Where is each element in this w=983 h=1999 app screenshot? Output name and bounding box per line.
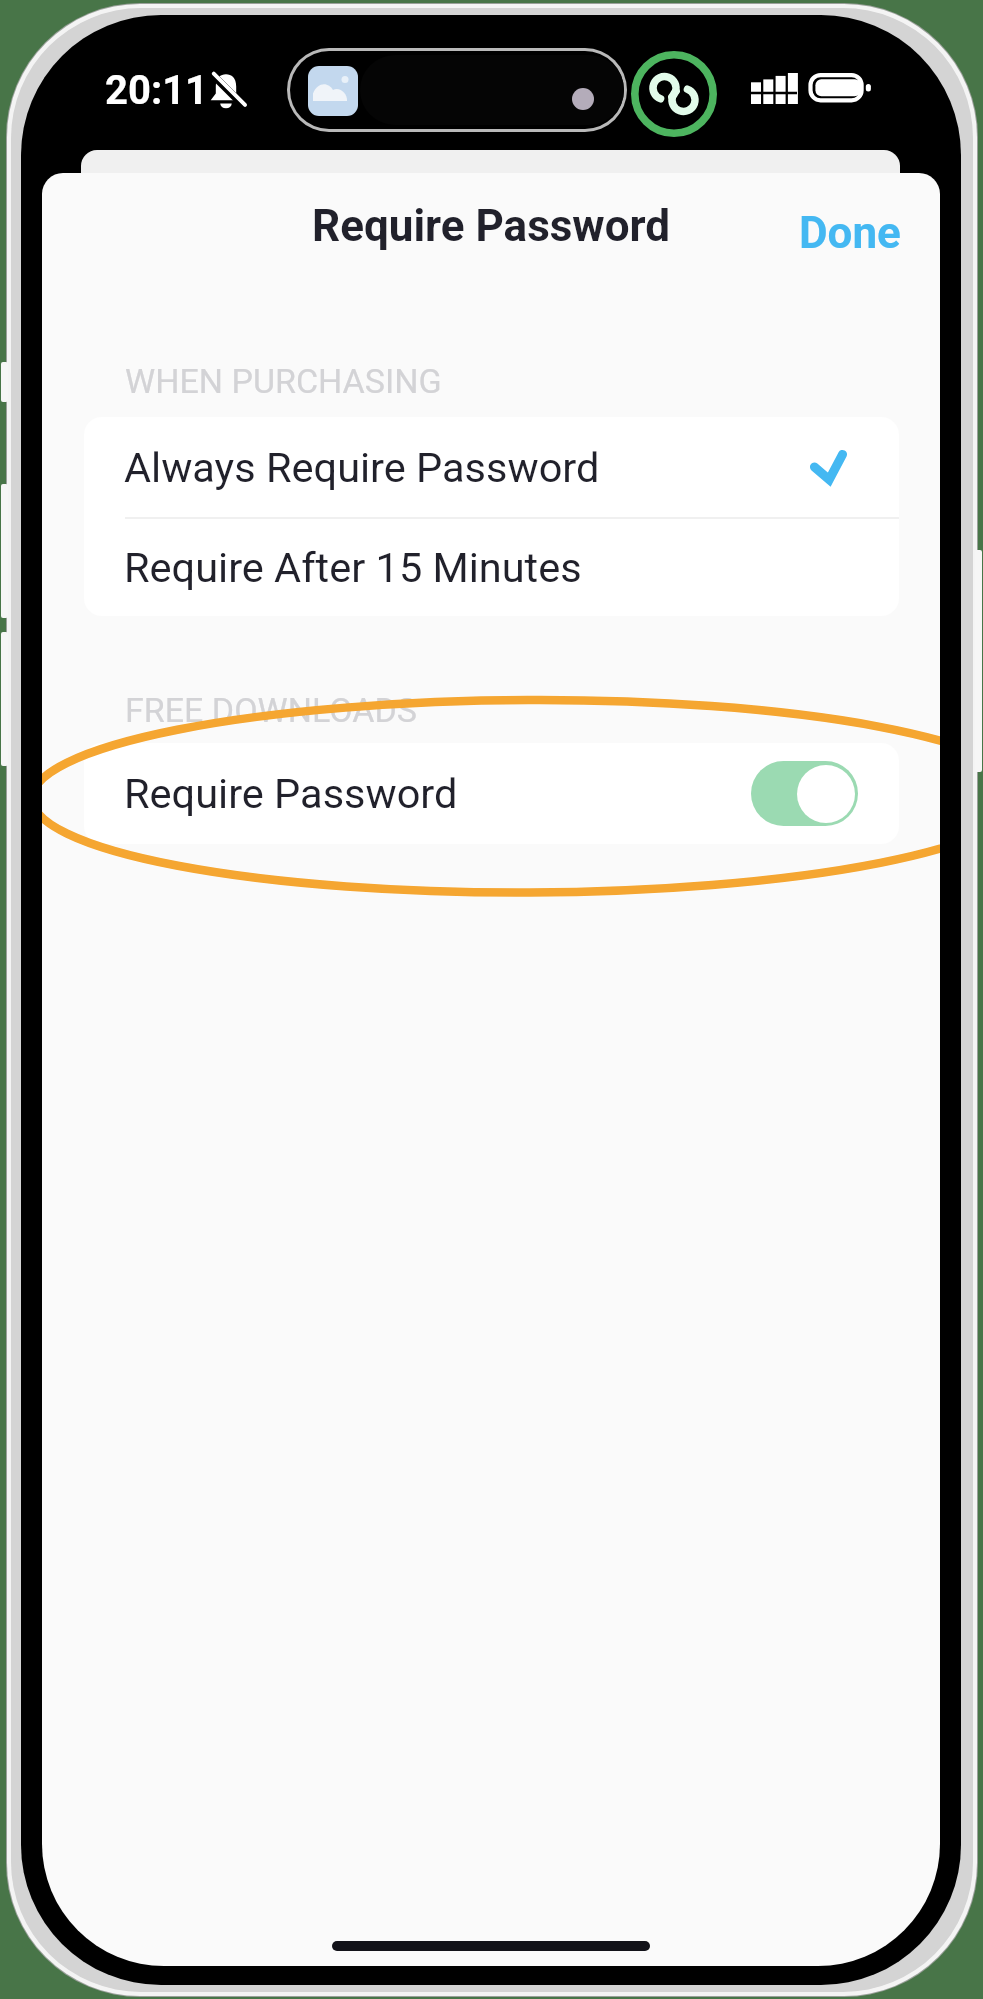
button[interactable]: Require Password xyxy=(84,743,899,844)
staticText: FREE DOWNLOADS xyxy=(125,690,417,730)
staticText: 20:11 xyxy=(105,67,209,114)
button[interactable]: Always Require Password xyxy=(84,417,899,517)
staticText: Require Password xyxy=(124,769,458,818)
button[interactable]: Done xyxy=(779,193,921,273)
staticText: Done xyxy=(799,207,901,259)
staticText: WHEN PURCHASING xyxy=(125,361,442,401)
button[interactable]: Require After 15 Minutes xyxy=(84,519,899,616)
staticText: Always Require Password xyxy=(124,443,600,492)
staticText: Require Password xyxy=(42,200,940,252)
other: Focus mode xyxy=(631,51,717,137)
staticText: Require After 15 Minutes xyxy=(124,543,582,592)
